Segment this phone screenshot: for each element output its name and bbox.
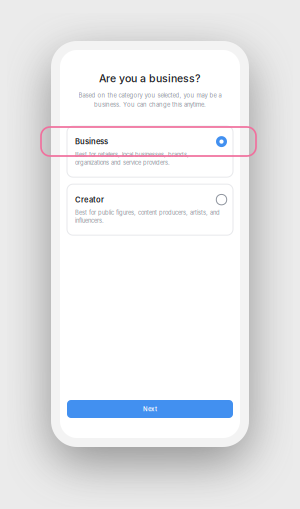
staticText: influencers.: [75, 217, 104, 224]
staticText: Best for retailers, local businesses, br…: [75, 151, 189, 158]
staticText: Are you a business?: [99, 72, 201, 85]
staticText: organizations and service providers.: [75, 159, 170, 166]
staticText: Business: [75, 137, 108, 146]
staticText: business. You can change this anytime.: [94, 101, 206, 108]
button[interactable]: Creator: [67, 184, 233, 235]
staticText: Creator: [75, 195, 104, 204]
staticText: Based on the category you selected, you …: [78, 92, 221, 99]
button[interactable]: Next: [67, 400, 233, 418]
staticText: Next: [143, 405, 157, 413]
staticText: Best for public figures, content produce…: [75, 209, 220, 216]
button[interactable]: Business: [67, 126, 233, 177]
